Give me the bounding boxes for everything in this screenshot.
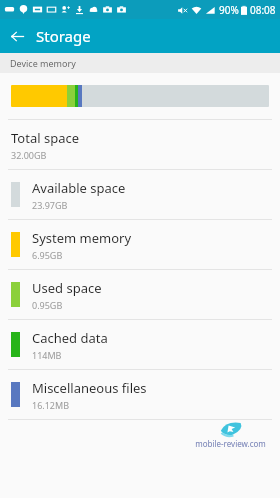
button[interactable]: Total space xyxy=(0,120,280,169)
staticText: System memory xyxy=(32,229,132,247)
staticText: mobile-review.com xyxy=(195,438,266,449)
staticText: 0.95GB xyxy=(32,299,63,311)
button[interactable]: System memory xyxy=(0,220,280,269)
staticText: 23.97GB xyxy=(32,199,68,211)
button[interactable]: Cached data xyxy=(0,320,280,369)
button[interactable]: Used space xyxy=(0,270,280,319)
staticText: Device memory xyxy=(10,57,76,69)
staticText: Available space xyxy=(32,179,126,197)
button[interactable]: Available space xyxy=(0,170,280,219)
staticText: 08:08 xyxy=(250,3,276,17)
staticText: 90% xyxy=(219,3,239,17)
staticText: 114MB xyxy=(32,349,62,361)
staticText: 16.12MB xyxy=(32,399,70,411)
staticText: 6.95GB xyxy=(32,249,63,261)
staticText: Total space xyxy=(11,129,79,147)
button[interactable]: Back xyxy=(0,19,34,53)
staticText: 32.00GB xyxy=(11,149,47,161)
staticText: Cached data xyxy=(32,329,108,347)
staticText: Miscellaneous files xyxy=(32,379,147,397)
staticText: Storage xyxy=(36,26,91,46)
staticText: Used space xyxy=(32,279,102,297)
button[interactable]: Miscellaneous files xyxy=(0,370,280,419)
